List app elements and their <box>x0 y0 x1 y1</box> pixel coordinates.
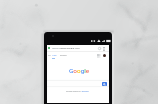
button[interactable]: Google offered in: Francais <box>66 90 89 92</box>
button[interactable]: Search <box>60 54 67 57</box>
button[interactable]: Reload page <box>98 47 101 50</box>
button[interactable]: https://www.google.com <box>52 46 80 49</box>
button[interactable]: All <box>48 54 51 57</box>
staticText: Google <box>69 67 90 75</box>
button[interactable]: New <box>52 54 57 57</box>
button[interactable]: Google apps <box>96 53 101 58</box>
button[interactable]: Google Search <box>102 82 107 86</box>
button[interactable]: More options <box>103 47 105 51</box>
button[interactable]: Search field <box>47 80 109 87</box>
button[interactable]: Google Account <box>103 54 106 57</box>
staticText: New <box>52 54 57 57</box>
